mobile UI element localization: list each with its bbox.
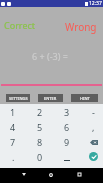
button[interactable]: 4: [0, 119, 26, 134]
staticText: 0: [37, 151, 43, 163]
staticText: 3: [64, 106, 70, 118]
staticText: 6 + (-3) =: [32, 50, 68, 62]
staticText: 6: [64, 121, 70, 133]
button[interactable]: -: [80, 104, 103, 119]
button[interactable]: Recents: [68, 167, 90, 182]
staticText: 9: [64, 136, 70, 148]
staticText: ,: [92, 121, 95, 133]
staticText: ENTER: [44, 96, 57, 101]
staticText: SETTINGS: [9, 96, 28, 101]
button[interactable]: 6: [53, 119, 80, 134]
button[interactable]: 7: [0, 134, 26, 149]
staticText: HINT: [80, 96, 90, 101]
staticText: 4: [10, 121, 16, 133]
button[interactable]: 2: [26, 104, 53, 119]
staticText: 5: [37, 121, 43, 133]
staticText: 12:37: [89, 0, 102, 7]
button[interactable]: 5: [26, 119, 53, 134]
staticText: 2: [37, 106, 43, 118]
button[interactable]: HINT: [71, 94, 98, 102]
staticText: .: [12, 151, 15, 163]
button[interactable]: Back: [13, 167, 35, 182]
staticText: Correct: [4, 19, 36, 31]
button[interactable]: 1: [0, 104, 26, 119]
button[interactable]: 0: [26, 149, 53, 164]
button[interactable]: ,: [80, 119, 103, 134]
button[interactable]: [53, 149, 80, 164]
button[interactable]: SETTINGS: [6, 94, 30, 102]
staticText: -: [92, 106, 95, 118]
button[interactable]: Home: [40, 167, 62, 182]
other: Backspace: [89, 139, 98, 145]
button[interactable]: 9: [53, 134, 80, 149]
staticText: 1: [10, 106, 16, 118]
staticText: Wrong: [65, 20, 97, 34]
button[interactable]: Enter: [80, 149, 103, 164]
staticText: 7: [10, 136, 16, 148]
staticText: 8: [37, 136, 43, 148]
button[interactable]: 3: [53, 104, 80, 119]
other: Enter: [89, 152, 98, 161]
button[interactable]: 8: [26, 134, 53, 149]
button[interactable]: ENTER: [38, 94, 63, 102]
button[interactable]: Backspace: [80, 134, 103, 149]
button[interactable]: .: [0, 149, 26, 164]
